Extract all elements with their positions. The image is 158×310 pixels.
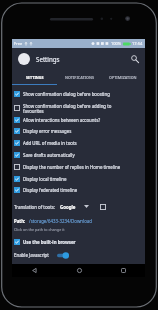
staticText: NOTIFICATIONS <box>65 75 94 80</box>
button[interactable]: Display the number of replies in Home ti… <box>14 162 144 172</box>
staticText: Allow interactions between accounts? <box>23 117 101 123</box>
button[interactable]: Enable Javascript <box>14 250 144 260</box>
staticText: Display local timeline <box>23 176 67 182</box>
button[interactable]: Search <box>128 52 142 66</box>
button[interactable]: SETTINGS <box>12 70 57 85</box>
button[interactable]: Translation of toots: <box>14 201 144 212</box>
staticText: Settings <box>36 55 60 63</box>
staticText: Display the number of replies in Home ti… <box>23 164 121 170</box>
staticText: Google <box>60 204 76 210</box>
staticText: Use the built-in browser <box>23 239 76 245</box>
staticText: Translation of toots: <box>14 204 56 210</box>
button[interactable]: Save drafts automatically <box>14 150 144 160</box>
button[interactable]: Home <box>57 264 101 277</box>
button[interactable]: Add URL of media in toots <box>14 138 144 148</box>
button[interactable]: Recent apps <box>101 264 145 277</box>
staticText: Path: <box>14 218 26 224</box>
button[interactable]: Allow interactions between accounts? <box>14 115 144 125</box>
button[interactable]: Show confirmation dialog before adding t… <box>14 101 144 115</box>
button[interactable]: Use the built-in browser <box>14 237 144 247</box>
staticText: Enable Javascript <box>14 252 49 258</box>
staticText: Add URL of media in toots <box>23 140 77 146</box>
button[interactable]: Display local timeline <box>14 174 144 184</box>
button[interactable]: Display error messages <box>14 126 144 136</box>
button[interactable]: OPTIMIZATION <box>101 70 145 85</box>
staticText: 100% <box>111 41 122 46</box>
staticText: Display federated timeline <box>23 187 78 193</box>
button[interactable]: NOTIFICATIONS <box>57 70 101 85</box>
staticText: Show confirmation dialog before boosting <box>23 91 110 97</box>
button[interactable]: Display federated timeline <box>14 185 144 195</box>
button[interactable]: Show confirmation dialog before boosting <box>14 89 144 99</box>
button[interactable]: Back <box>12 264 57 277</box>
staticText: Display error messages <box>23 128 72 134</box>
staticText: OPTIMIZATION <box>109 75 137 80</box>
button[interactable]: Path: <box>14 216 144 225</box>
staticText: Click on the path to change it <box>14 227 65 232</box>
staticText: /storage/6433-3234/Download <box>29 218 93 224</box>
staticText: SETTINGS <box>26 75 44 80</box>
staticText: Free <box>14 41 23 46</box>
staticText: 17:54 <box>132 41 143 46</box>
staticText: Save drafts automatically <box>23 152 75 158</box>
button[interactable]: Account <box>18 53 30 65</box>
staticText: Show confirmation dialog before adding t… <box>23 103 112 114</box>
